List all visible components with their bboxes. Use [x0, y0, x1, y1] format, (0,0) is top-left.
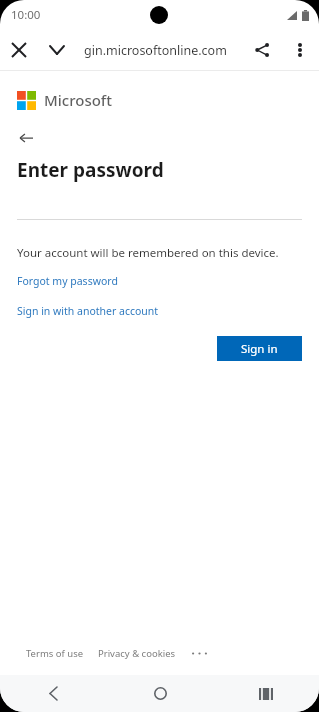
staticText: 10:00	[11, 7, 41, 23]
button[interactable]: Expand	[38, 31, 76, 69]
staticText: Sign in with another account	[17, 304, 159, 318]
button[interactable]: More options	[281, 31, 319, 69]
button[interactable]: Back	[0, 675, 107, 712]
staticText: Forgot my password	[17, 274, 118, 288]
staticText: Microsoft	[44, 90, 112, 110]
button[interactable]: Share	[243, 31, 281, 69]
staticText: Your account will be remembered on this …	[17, 245, 279, 261]
button[interactable]: Sign in with another account	[17, 304, 159, 318]
button[interactable]: More	[188, 645, 210, 661]
button[interactable]: Back	[13, 125, 39, 151]
button[interactable]: Recent apps	[213, 675, 319, 712]
button[interactable]: Privacy & cookies	[98, 647, 176, 660]
button[interactable]: Home	[107, 675, 213, 712]
button[interactable]: Terms of use	[26, 647, 84, 660]
staticText: Enter password	[17, 157, 164, 183]
button[interactable]: Close	[0, 31, 38, 69]
staticText: Privacy & cookies	[98, 647, 176, 660]
staticText: gin.microsoftonline.com	[84, 42, 227, 59]
staticText: Terms of use	[26, 647, 84, 660]
staticText: Sign in	[241, 341, 278, 357]
button[interactable]: Forgot my password	[17, 274, 118, 288]
button[interactable]: Sign in	[217, 336, 302, 361]
